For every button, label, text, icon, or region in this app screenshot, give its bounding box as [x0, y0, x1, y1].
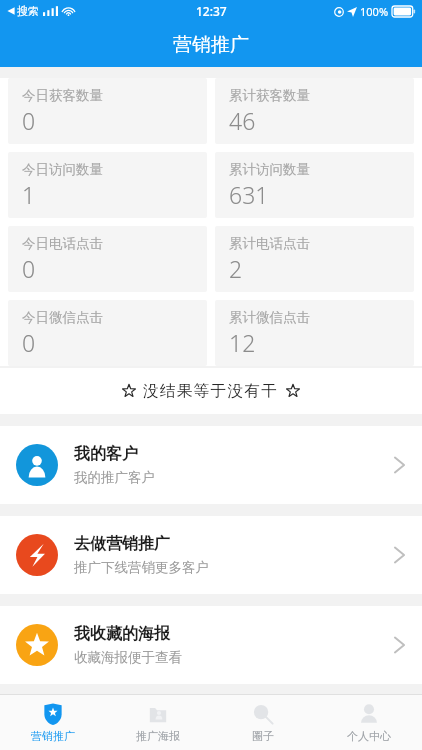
staticText: 圈子	[252, 729, 274, 743]
other: 打开 我收藏的海报	[393, 634, 406, 656]
staticText: 0	[22, 105, 36, 136]
other: 打开 去做营销推广	[393, 544, 406, 566]
button[interactable]: 营销推广	[0, 695, 105, 750]
staticText: 46	[229, 105, 256, 136]
staticText: 我的推广客户	[74, 469, 155, 486]
staticText: 去做营销推广	[74, 534, 170, 554]
button[interactable]: 今日电话点击	[8, 226, 207, 292]
button[interactable]: 累计访问数量	[215, 152, 414, 218]
staticText: 1	[22, 179, 36, 210]
staticText: 今日访问数量	[22, 161, 103, 178]
staticText: 今日微信点击	[22, 309, 103, 326]
staticText: 累计访问数量	[229, 161, 310, 178]
button[interactable]: 个人中心	[316, 695, 422, 750]
button[interactable]: 去做营销推广	[0, 516, 422, 594]
button[interactable]: 今日获客数量	[8, 78, 207, 144]
staticText: 推广海报	[136, 729, 180, 743]
staticText: 个人中心	[347, 729, 391, 743]
staticText: 0	[22, 327, 36, 358]
staticText: 631	[229, 179, 269, 210]
staticText: 100%	[360, 4, 389, 19]
button[interactable]: 今日访问数量	[8, 152, 207, 218]
button[interactable]: 推广海报	[105, 695, 210, 750]
button[interactable]: 累计电话点击	[215, 226, 414, 292]
staticText: 我的客户	[74, 444, 138, 464]
staticText: 没结果等于没有干	[143, 381, 279, 401]
other: 打开 我的客户	[393, 454, 406, 476]
button[interactable]: 累计获客数量	[215, 78, 414, 144]
staticText: 收藏海报便于查看	[74, 649, 182, 666]
button[interactable]: 今日微信点击	[8, 300, 207, 366]
button[interactable]: 圈子	[210, 695, 316, 750]
staticText: 2	[229, 253, 243, 284]
staticText: 0	[22, 253, 36, 284]
staticText: 累计微信点击	[229, 309, 310, 326]
staticText: 今日获客数量	[22, 87, 103, 104]
button[interactable]: 我收藏的海报	[0, 606, 422, 684]
staticText: 12:37	[196, 3, 227, 19]
staticText: 累计电话点击	[229, 235, 310, 252]
staticText: 今日电话点击	[22, 235, 103, 252]
staticText: 我收藏的海报	[74, 624, 170, 644]
staticText: 搜索	[17, 4, 39, 18]
staticText: 推广下线营销更多客户	[74, 559, 209, 576]
staticText: 营销推广	[31, 729, 75, 743]
button[interactable]: 我的客户	[0, 426, 422, 504]
staticText: 营销推广	[173, 33, 249, 57]
staticText: 12	[229, 327, 256, 358]
staticText: 累计获客数量	[229, 87, 310, 104]
button[interactable]: 累计微信点击	[215, 300, 414, 366]
